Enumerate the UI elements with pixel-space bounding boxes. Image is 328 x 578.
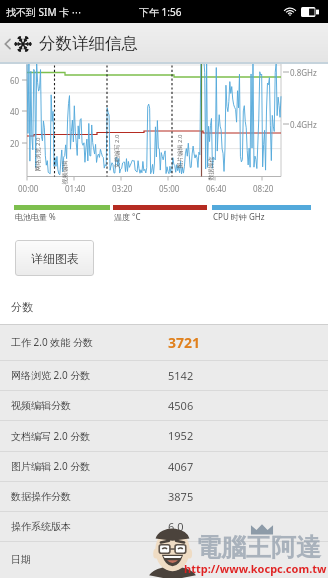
- staticText: 40: [10, 106, 20, 117]
- staticText: 00:00: [18, 183, 39, 194]
- button[interactable]: 网络浏览 2.0 分数: [0, 360, 328, 390]
- staticText: 3875: [168, 489, 194, 504]
- staticText: 分数详细信息: [39, 33, 138, 54]
- button[interactable]: 图片编辑 2.0 分数: [0, 451, 328, 481]
- staticText: 视频编辑: [60, 160, 68, 184]
- staticText: 电池电量 %: [15, 211, 56, 222]
- staticText: 工作 2.0 效能 分数: [11, 335, 93, 349]
- other: Back: [3, 35, 12, 53]
- staticText: 视频编辑分数: [11, 399, 71, 412]
- staticText: http://www.kocpc.com.tw: [184, 561, 327, 576]
- button[interactable]: 文档编写 2.0 分数: [0, 420, 328, 451]
- other: Wi-Fi: [284, 7, 296, 16]
- staticText: 找不到 SIM 卡 ⋯: [6, 5, 82, 19]
- staticText: 06:40: [206, 183, 227, 194]
- staticText: 图片编辑 2.0 分数: [11, 459, 91, 473]
- staticText: 電腦王阿達: [196, 532, 321, 563]
- staticText: 下午 1:56: [139, 5, 182, 19]
- button[interactable]: 日期: [0, 541, 328, 578]
- staticText: 5142: [168, 368, 194, 383]
- staticText: 05:00: [159, 183, 180, 194]
- staticText: 网络浏览 2.0 分数: [11, 368, 91, 382]
- staticText: 温度 °C: [114, 211, 141, 222]
- staticText: CPU 时钟 GHz: [213, 211, 265, 222]
- staticText: 08:20: [253, 183, 274, 194]
- staticText: 4506: [168, 398, 194, 413]
- staticText: 03:20: [112, 183, 133, 194]
- staticText: 详细图表: [31, 251, 79, 266]
- staticText: 0.8GHz: [290, 67, 317, 78]
- staticText: 3721: [168, 333, 201, 352]
- staticText: 4067: [168, 459, 194, 474]
- staticText: 1952: [168, 428, 194, 443]
- staticText: 分数: [11, 300, 33, 314]
- staticText: 日期: [11, 553, 31, 566]
- staticText: 操作系统版本: [11, 520, 71, 533]
- staticText: 文档编写 2.0: [112, 133, 120, 168]
- other: Battery: [301, 7, 319, 17]
- button[interactable]: 数据操作分数: [0, 481, 328, 511]
- button[interactable]: 操作系统版本: [0, 511, 328, 541]
- staticText: 01:40: [65, 183, 86, 194]
- staticText: 数据操作: [206, 156, 214, 180]
- button[interactable]: 详细图表: [15, 240, 94, 276]
- staticText: 20: [10, 138, 20, 149]
- staticText: 网络浏览 2.0: [33, 136, 41, 171]
- staticText: 60: [10, 75, 20, 86]
- staticText: 图片编辑 2.0: [175, 133, 183, 168]
- staticText: 文档编写 2.0 分数: [11, 429, 91, 443]
- staticText: 6.0: [168, 519, 184, 534]
- button[interactable]: 工作 2.0 效能 分数: [0, 324, 328, 360]
- button[interactable]: 视频编辑分数: [0, 390, 328, 420]
- staticText: 数据操作分数: [11, 490, 71, 503]
- staticText: 0.4GHz: [290, 119, 317, 130]
- button[interactable]: Back: [0, 23, 328, 64]
